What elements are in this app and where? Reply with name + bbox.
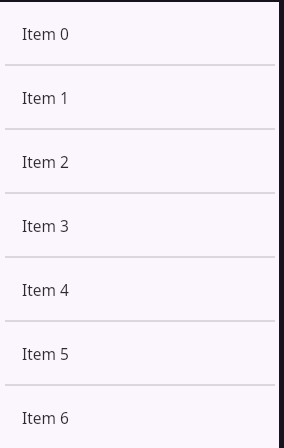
button[interactable]: Item 0 bbox=[0, 2, 284, 66]
staticText: Item 6 bbox=[22, 407, 69, 428]
staticText: Item 5 bbox=[22, 343, 69, 364]
button[interactable]: Item 4 bbox=[0, 258, 284, 322]
staticText: Item 1 bbox=[22, 87, 69, 108]
staticText: Item 2 bbox=[22, 151, 69, 172]
button[interactable]: Item 3 bbox=[0, 194, 284, 258]
button[interactable]: Item 5 bbox=[0, 322, 284, 386]
staticText: Item 4 bbox=[22, 279, 69, 300]
button[interactable]: Item 2 bbox=[0, 130, 284, 194]
button[interactable]: Item 1 bbox=[0, 66, 284, 130]
staticText: Item 3 bbox=[22, 215, 69, 236]
staticText: Item 0 bbox=[22, 23, 69, 44]
button[interactable]: Item 6 bbox=[0, 386, 284, 448]
